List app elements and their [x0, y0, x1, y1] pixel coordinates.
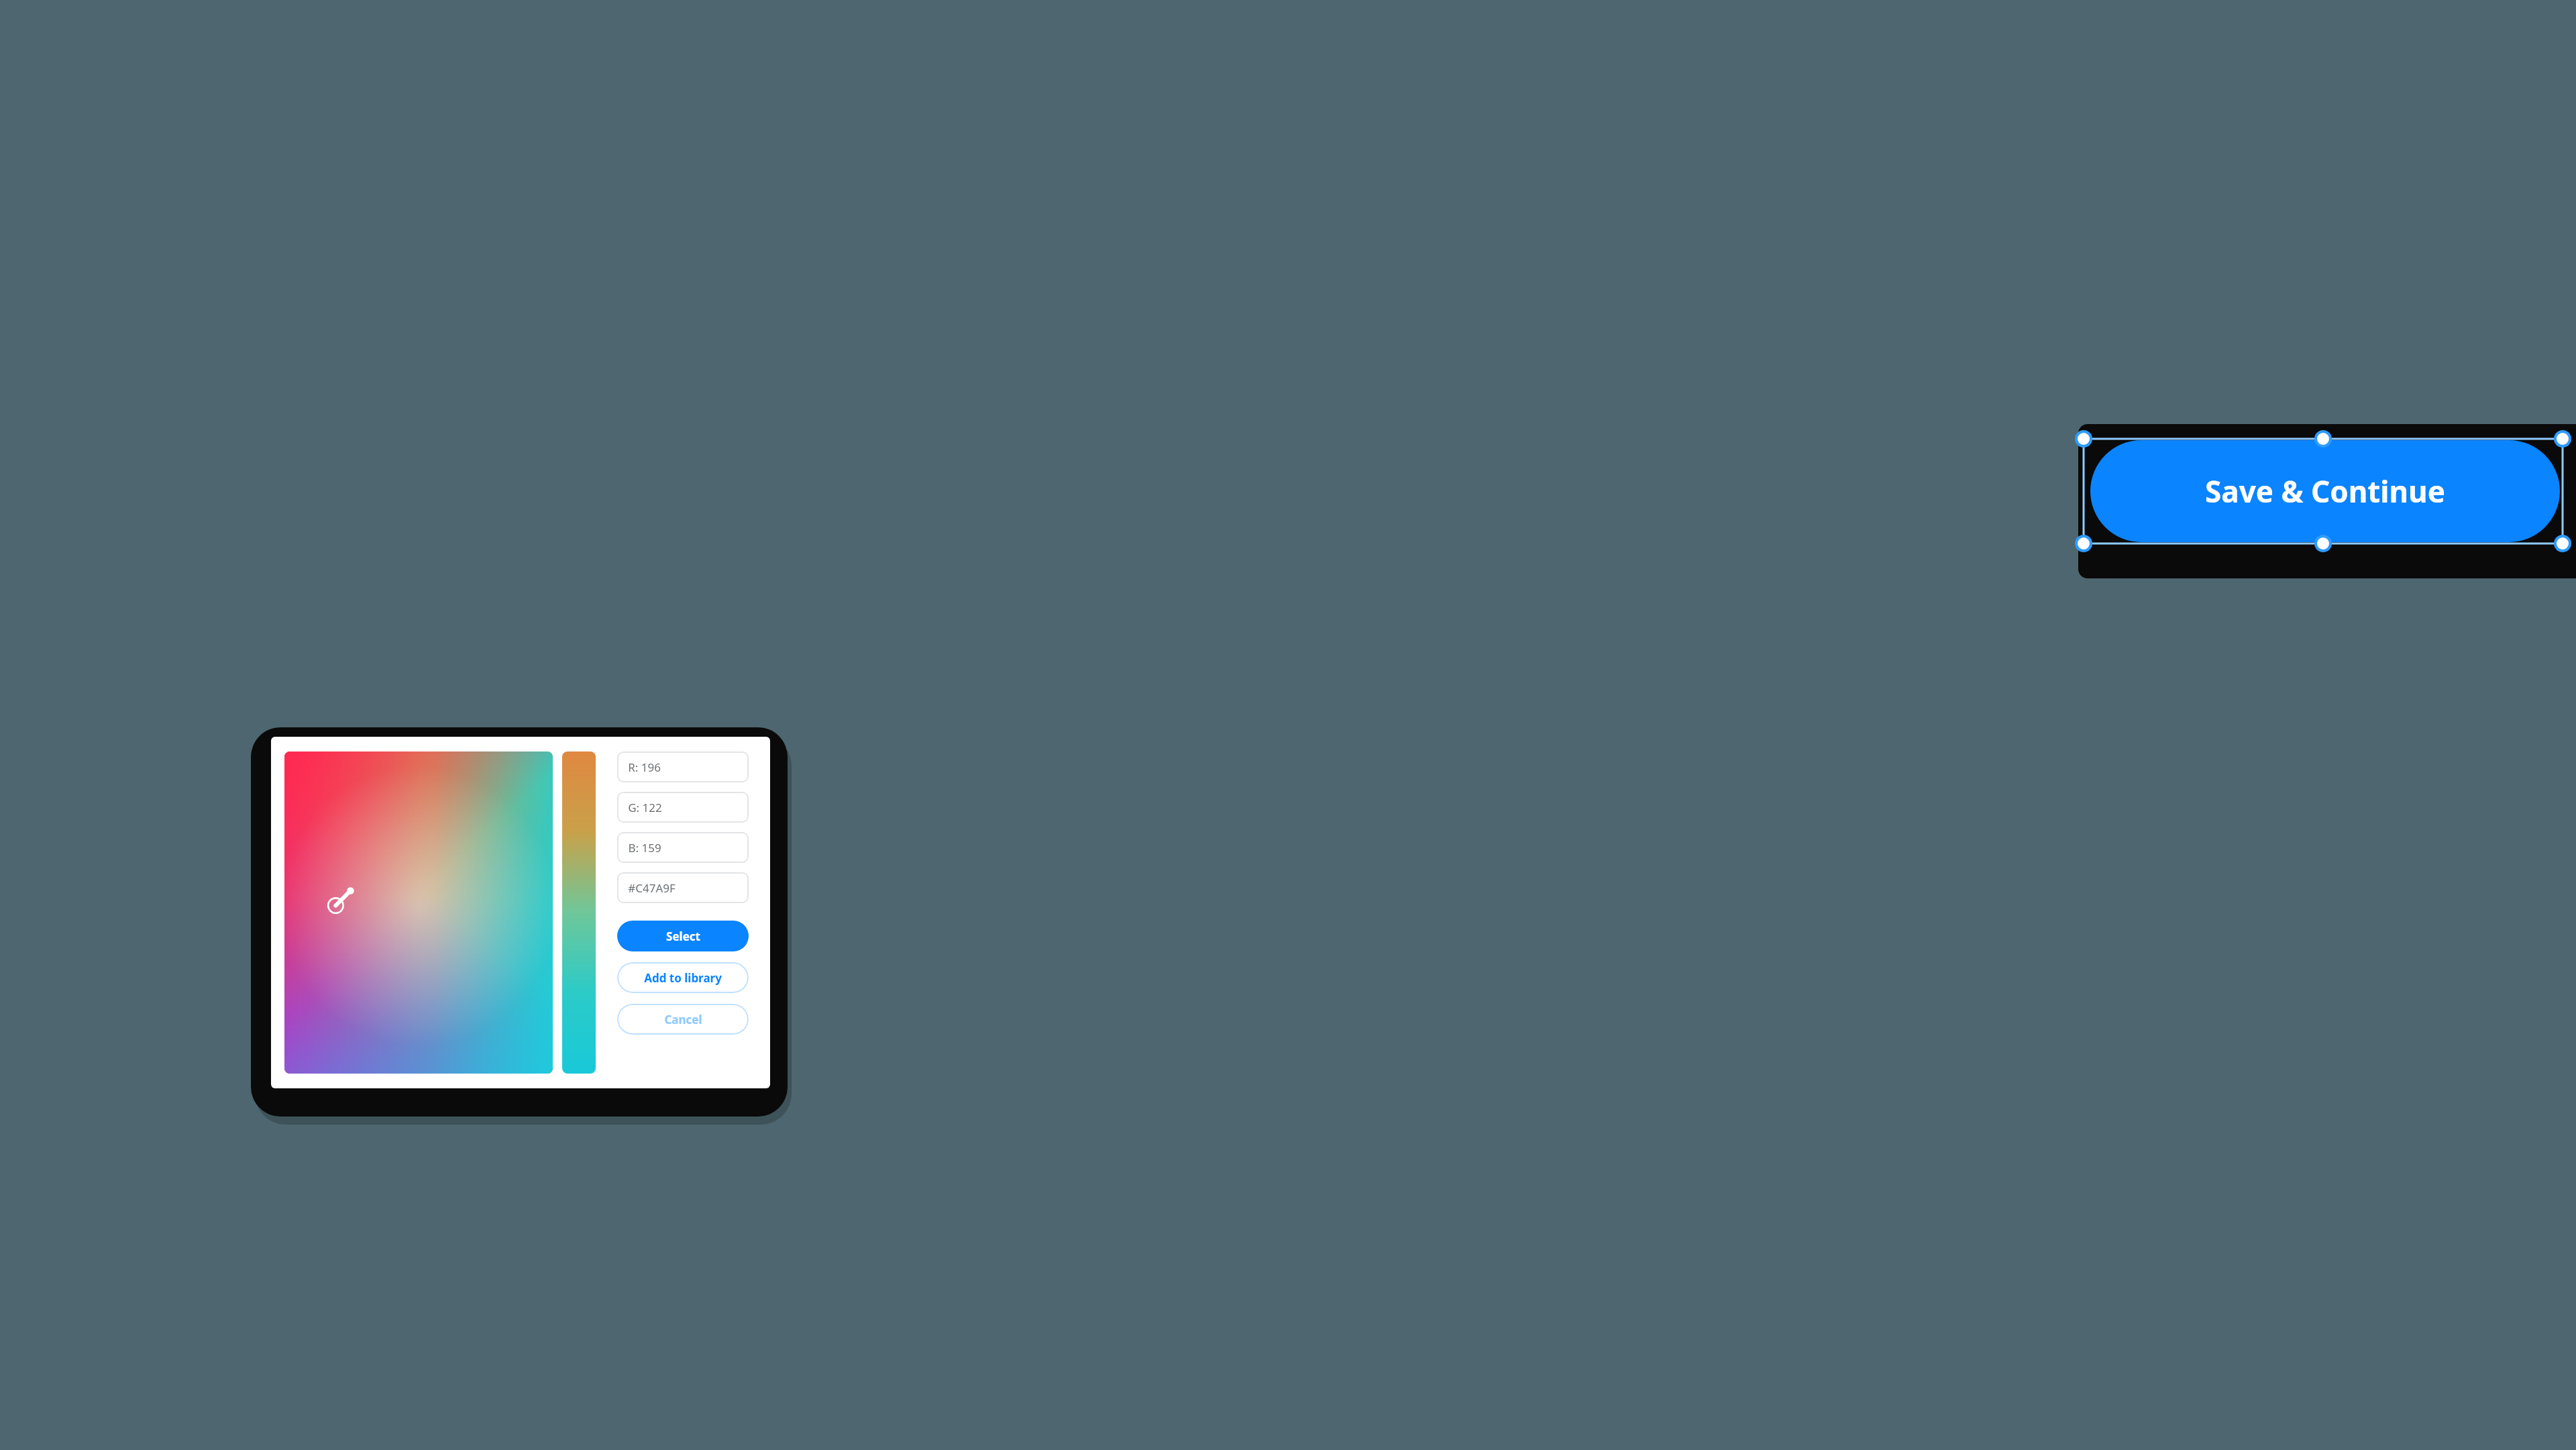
staticText: Save & Continue — [2205, 471, 2445, 511]
button[interactable]: R: 196 — [617, 752, 749, 782]
button[interactable] — [284, 752, 553, 1074]
staticText: Cancel — [664, 1012, 702, 1027]
button[interactable]: G: 122 — [617, 792, 749, 823]
staticText: Add to library — [644, 970, 722, 986]
button[interactable]: Cancel — [617, 1004, 749, 1035]
button[interactable]: Select — [617, 921, 749, 951]
staticText: Select — [666, 929, 700, 944]
staticText: B: 159 — [628, 840, 661, 856]
staticText: R: 196 — [628, 760, 661, 775]
button[interactable]: Add to library — [617, 962, 749, 993]
button[interactable]: Save & Continue — [2090, 440, 2560, 542]
staticText: #C47A9F — [628, 880, 676, 896]
button[interactable] — [562, 752, 596, 1074]
button[interactable]: B: 159 — [617, 832, 749, 863]
button[interactable]: #C47A9F — [617, 872, 749, 903]
staticText: G: 122 — [628, 800, 662, 815]
